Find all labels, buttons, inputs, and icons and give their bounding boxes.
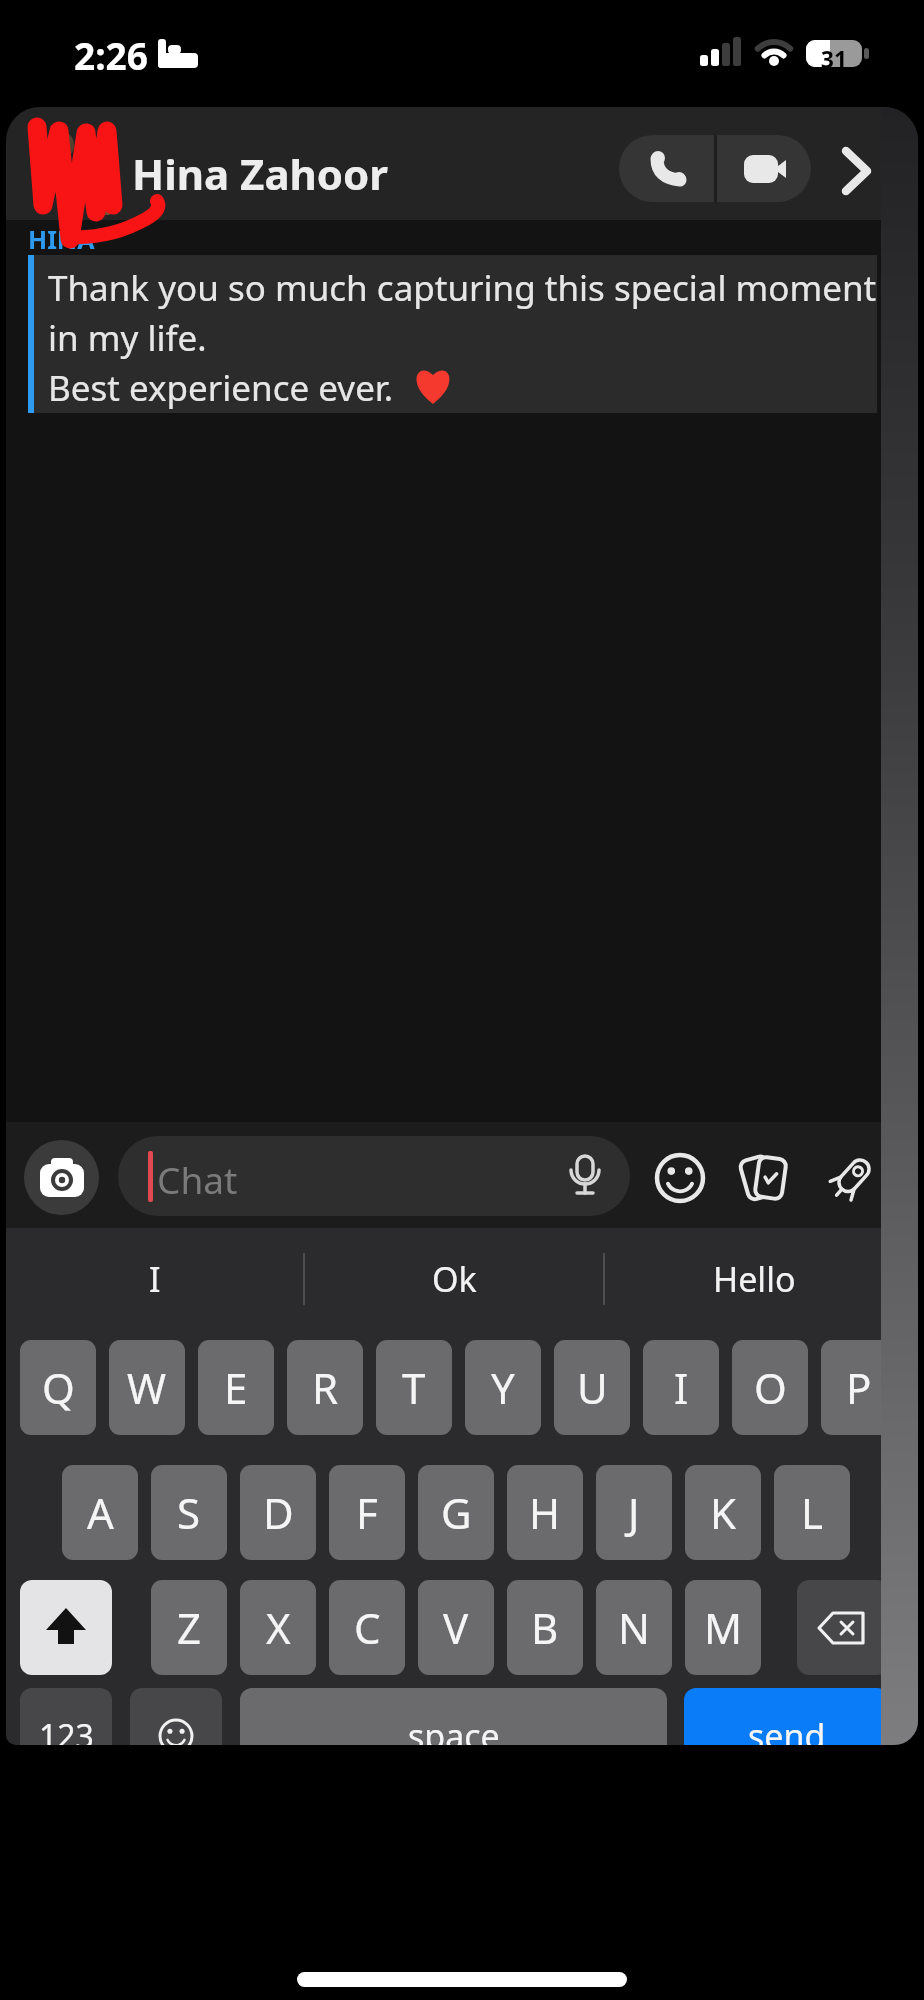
staticText: Ok: [432, 1256, 477, 1302]
staticText: K: [710, 1484, 736, 1541]
button[interactable]: [826, 1151, 878, 1205]
staticText: Z: [177, 1599, 202, 1656]
button[interactable]: K: [685, 1465, 761, 1560]
button[interactable]: D: [240, 1465, 316, 1560]
button[interactable]: O: [732, 1340, 808, 1435]
button[interactable]: I: [6, 1253, 303, 1305]
button[interactable]: 123: [20, 1688, 112, 1745]
staticText: X: [266, 1599, 291, 1656]
staticText: 123: [39, 1714, 94, 1745]
staticText: J: [628, 1484, 640, 1541]
staticText: H: [529, 1484, 561, 1541]
staticText: Chat: [157, 1154, 238, 1204]
button[interactable]: R: [287, 1340, 363, 1435]
staticText: P: [846, 1359, 872, 1416]
button[interactable]: [130, 1688, 222, 1745]
staticText: N: [618, 1599, 650, 1656]
staticText: B: [531, 1599, 559, 1656]
staticText: space: [408, 1713, 500, 1745]
button[interactable]: V: [418, 1580, 494, 1675]
button[interactable]: F: [329, 1465, 405, 1560]
staticText: A: [87, 1484, 114, 1541]
button[interactable]: [797, 1580, 889, 1675]
button[interactable]: H: [507, 1465, 583, 1560]
button[interactable]: P: [821, 1340, 897, 1435]
staticText: F: [356, 1484, 378, 1541]
button[interactable]: Chat: [118, 1136, 630, 1216]
staticText: L: [801, 1484, 824, 1541]
staticText: Q: [42, 1359, 75, 1416]
button[interactable]: [836, 147, 880, 195]
staticText: M: [704, 1599, 743, 1656]
staticText: E: [224, 1359, 248, 1416]
staticText: HINA: [28, 222, 95, 256]
button[interactable]: B: [507, 1580, 583, 1675]
button[interactable]: J: [596, 1465, 672, 1560]
staticText: send: [748, 1713, 826, 1745]
button[interactable]: X: [240, 1580, 316, 1675]
button[interactable]: E: [198, 1340, 274, 1435]
button[interactable]: space: [240, 1688, 667, 1745]
button[interactable]: G: [418, 1465, 494, 1560]
button[interactable]: L: [774, 1465, 850, 1560]
button[interactable]: Z: [151, 1580, 227, 1675]
staticText: U: [577, 1359, 608, 1416]
button[interactable]: Hello: [605, 1253, 903, 1305]
staticText: D: [263, 1484, 294, 1541]
button[interactable]: [20, 1580, 112, 1675]
staticText: I: [149, 1256, 161, 1302]
staticText: T: [402, 1359, 426, 1416]
staticText: Y: [491, 1359, 515, 1416]
button[interactable]: A: [62, 1465, 138, 1560]
button[interactable]: M: [685, 1580, 761, 1675]
staticText: I: [674, 1359, 689, 1416]
button[interactable]: C: [329, 1580, 405, 1675]
button[interactable]: Q: [20, 1340, 96, 1435]
staticText: O: [754, 1359, 787, 1416]
staticText: R: [312, 1359, 339, 1416]
button[interactable]: send: [684, 1688, 889, 1745]
button[interactable]: [739, 1150, 791, 1206]
button[interactable]: N: [596, 1580, 672, 1675]
button[interactable]: [24, 1140, 99, 1215]
staticText: G: [441, 1484, 472, 1541]
staticText: C: [354, 1599, 381, 1656]
button[interactable]: W: [109, 1340, 185, 1435]
button[interactable]: I: [643, 1340, 719, 1435]
staticText: Thank you so much capturing this special…: [48, 264, 877, 411]
button[interactable]: U: [554, 1340, 630, 1435]
staticText: V: [443, 1599, 469, 1656]
button[interactable]: Ok: [305, 1253, 603, 1305]
staticText: S: [177, 1484, 201, 1541]
button[interactable]: T: [376, 1340, 452, 1435]
staticText: Hello: [713, 1256, 796, 1302]
button[interactable]: S: [151, 1465, 227, 1560]
button[interactable]: [619, 135, 811, 202]
staticText: 2:26: [74, 30, 148, 80]
button[interactable]: [654, 1152, 706, 1204]
staticText: 31: [806, 43, 862, 69]
staticText: W: [127, 1359, 167, 1416]
button[interactable]: Y: [465, 1340, 541, 1435]
staticText: Hina Zahoor: [132, 145, 389, 202]
